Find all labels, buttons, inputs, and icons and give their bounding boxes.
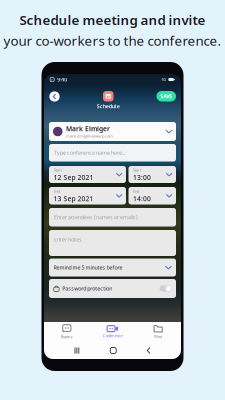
staticText: Type conference name here...	[54, 149, 125, 156]
button[interactable]: Rooms	[44, 322, 90, 342]
staticText: 5G	[161, 77, 166, 82]
staticText: Remind me 5 minutes before	[53, 264, 122, 271]
button[interactable]: Mark Elmiger	[49, 122, 176, 141]
staticText: Mark Elmiger	[66, 124, 110, 133]
button[interactable]: Start	[49, 166, 126, 183]
staticText: 14:00	[133, 194, 151, 203]
staticText: Start	[133, 167, 141, 172]
staticText: SAVE	[160, 93, 172, 100]
button[interactable]: End	[128, 187, 176, 204]
staticText: Rooms	[61, 334, 73, 339]
staticText: Enter notes	[54, 236, 82, 243]
staticText: your co-workers to the conference.	[3, 32, 221, 49]
staticText: 12 Sep 2021	[53, 173, 93, 182]
staticText: Files	[154, 334, 162, 339]
staticText: 9:40	[57, 76, 67, 83]
button[interactable]: End	[49, 187, 126, 204]
button[interactable]: Type conference name here...	[49, 144, 176, 161]
button[interactable]: Back	[49, 91, 60, 102]
button[interactable]: SAVE	[156, 91, 176, 101]
staticText: Conference	[102, 333, 122, 338]
staticText: Schedule	[97, 103, 120, 110]
staticText: Schedule meeting and invite	[19, 11, 205, 29]
button[interactable]: Enter attendees (names or emails)	[49, 208, 176, 226]
button[interactable]: Remind me 5 minutes before	[49, 258, 176, 276]
button[interactable]: Conference	[90, 322, 135, 342]
staticText: 13 Sep 2021	[53, 194, 93, 203]
button[interactable]: Enter notes	[49, 230, 176, 256]
button[interactable]: Start	[128, 166, 176, 183]
staticText: mark.emig@viewarp.com	[66, 133, 113, 139]
staticText: End	[53, 188, 59, 194]
staticText: Start	[53, 167, 61, 172]
button[interactable]: Files	[135, 322, 181, 342]
staticText: 13:00	[133, 173, 151, 182]
button[interactable]: Password protection	[49, 279, 176, 298]
staticText: End	[133, 188, 139, 194]
staticText: Enter attendees (names or emails)	[54, 214, 138, 221]
staticText: u	[51, 78, 53, 81]
staticText: Password protection	[62, 285, 112, 292]
